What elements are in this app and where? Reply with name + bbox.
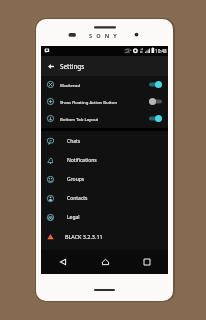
button[interactable]: Groups [41,170,168,189]
staticText: SONY [89,32,121,40]
button[interactable]: Recent apps [126,250,168,274]
staticText: Chats [67,138,81,145]
button[interactable]: Notifications [41,151,168,170]
staticText: Notifications [67,157,97,164]
button[interactable]: Chats [41,132,168,151]
staticText: Settings [60,62,85,71]
staticText: Groups [67,176,85,183]
button[interactable]: Blockread [41,76,168,93]
button[interactable]: Back [41,250,84,274]
button[interactable]: Show Floating Action Button [41,93,168,110]
staticText: 10:48 [155,48,167,54]
staticText: Show Floating Action Button [60,99,148,105]
button[interactable]: Home [84,250,126,274]
button[interactable]: Back [41,56,60,76]
button[interactable]: Contacts [41,189,168,208]
staticText: Bottom Tab Layout [60,116,148,122]
staticText: Legal [67,214,80,221]
button[interactable]: Legal [41,208,168,227]
staticText: Blockread [60,82,148,88]
button[interactable]: BLACK 3.2.3.11 [41,227,168,246]
staticText: BLACK 3.2.3.11 [65,233,103,240]
button[interactable]: Bottom Tab Layout [41,110,168,127]
staticText: Contacts [67,195,88,202]
